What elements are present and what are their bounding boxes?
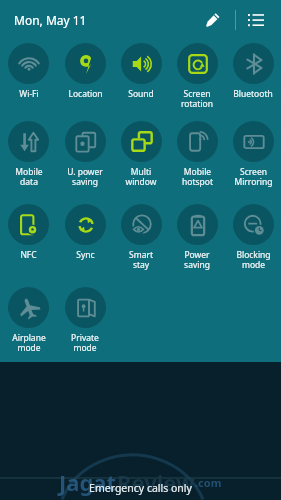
staticText: Jagat — [59, 467, 117, 497]
staticText: Screen Mirroring — [234, 166, 273, 187]
staticText: .com — [195, 475, 222, 490]
button[interactable]: U. power saving — [57, 118, 113, 201]
staticText: Blocking mode — [236, 249, 271, 270]
staticText: Review — [117, 467, 195, 497]
staticText: Emergency calls only — [0, 481, 281, 495]
button[interactable]: Power saving — [169, 201, 225, 284]
button[interactable]: Bluetooth — [225, 40, 281, 118]
button[interactable]: Multi window — [113, 118, 169, 201]
button[interactable]: Smart stay — [113, 201, 169, 284]
staticText: NFC — [20, 249, 37, 261]
button[interactable]: NFC — [0, 201, 57, 284]
button[interactable]: Location — [57, 40, 113, 118]
staticText: Location — [68, 88, 103, 100]
staticText: Wi-Fi — [19, 88, 39, 100]
button[interactable]: Screen rotation — [169, 40, 225, 118]
button[interactable]: Wi-Fi — [0, 40, 57, 118]
staticText: Airplane mode — [12, 332, 46, 353]
staticText: Power saving — [184, 249, 210, 270]
staticText: Sound — [128, 88, 154, 100]
staticText: Multi window — [125, 166, 157, 187]
staticText: Smart stay — [129, 249, 153, 270]
button[interactable]: Private mode — [57, 284, 113, 362]
staticText: Mobile data — [15, 166, 43, 187]
staticText: Mobile hotspot — [182, 166, 213, 187]
staticText: Private mode — [71, 332, 99, 353]
staticText: Sync — [76, 249, 95, 261]
staticText: Bluetooth — [233, 88, 273, 100]
button[interactable]: Mobile data — [0, 118, 57, 201]
button[interactable]: Show list — [241, 5, 271, 35]
button[interactable]: Blocking mode — [225, 201, 281, 284]
button[interactable]: Screen Mirroring — [225, 118, 281, 201]
staticText: Screen rotation — [181, 88, 213, 109]
button[interactable]: Sync — [57, 201, 113, 284]
staticText: U. power saving — [67, 166, 103, 187]
button[interactable]: Airplane mode — [0, 284, 57, 362]
button[interactable]: Mobile hotspot — [169, 118, 225, 201]
button[interactable]: Edit quick settings — [197, 6, 225, 34]
staticText: Mon, May 11 — [14, 12, 87, 28]
button[interactable]: Sound — [113, 40, 169, 118]
